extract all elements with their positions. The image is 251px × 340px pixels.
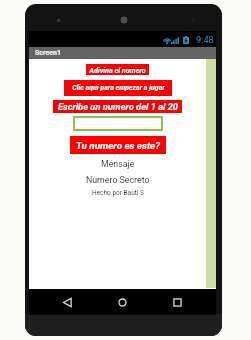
button[interactable] [73, 116, 163, 131]
button[interactable]: Back [55, 289, 79, 315]
button[interactable]: Tu numero es este? [70, 136, 166, 154]
button[interactable]: Clic aqui para empezar a jugar [64, 80, 172, 96]
staticText: Numero Secreto [86, 175, 150, 185]
staticText: Clic aqui para empezar a jugar [72, 84, 165, 92]
button[interactable]: Home [110, 289, 134, 315]
staticText: Tu numero es este? [76, 140, 160, 151]
button[interactable]: Adivina el numero [86, 64, 149, 75]
staticText: Screen1 [35, 49, 61, 57]
staticText: Mensaje [101, 159, 135, 169]
staticText: Hecho por Bauti S [92, 189, 144, 197]
staticText: Escribe un numero del 1 al 20 [58, 101, 178, 112]
staticText: Adivina el numero [89, 66, 146, 74]
staticText: 9:48 [196, 34, 214, 45]
button[interactable]: Escribe un numero del 1 al 20 [53, 100, 182, 113]
button[interactable]: Recent apps [165, 289, 189, 315]
